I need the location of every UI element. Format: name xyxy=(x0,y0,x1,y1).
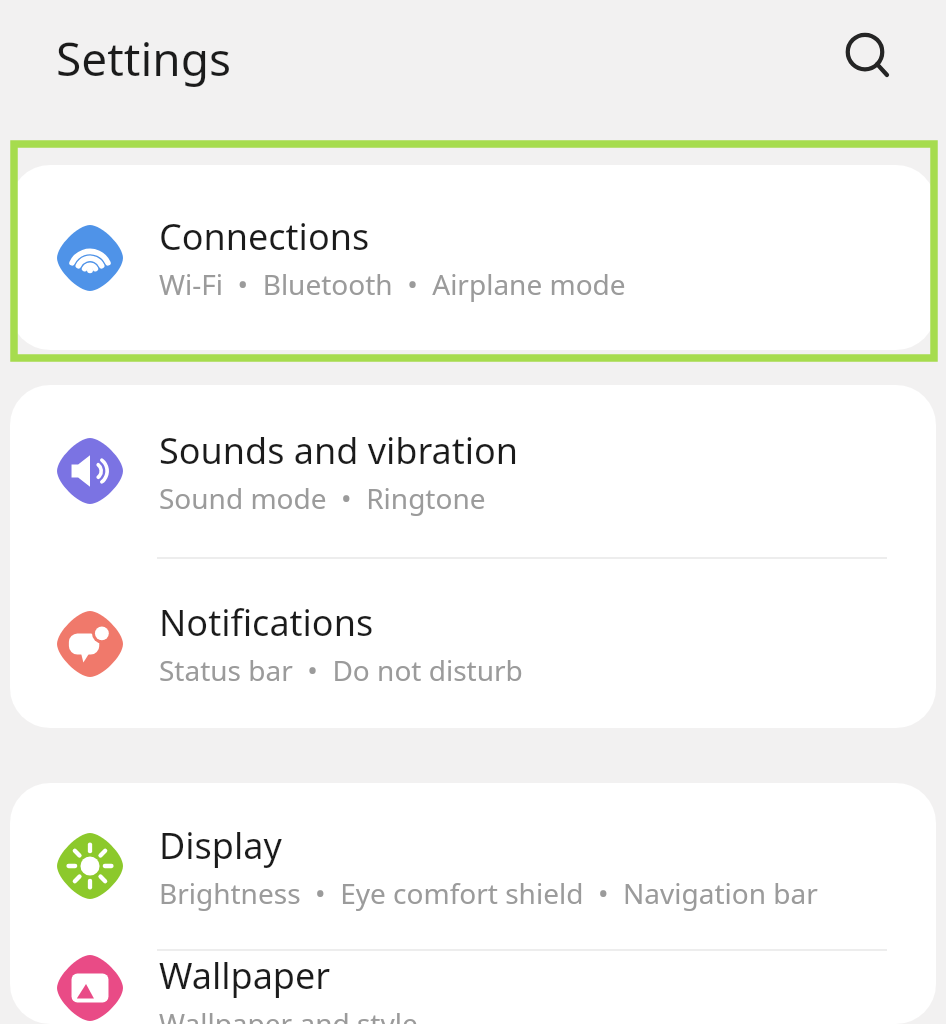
staticText: Settings xyxy=(56,27,232,90)
staticText: Connections xyxy=(159,212,370,261)
button[interactable]: Search xyxy=(827,15,911,99)
staticText: Sound mode • Ringtone xyxy=(159,479,486,517)
button[interactable]: Display xyxy=(10,783,936,949)
staticText: Notifications xyxy=(159,598,374,647)
button[interactable]: Notifications xyxy=(10,559,936,728)
staticText: Display xyxy=(159,821,282,870)
button[interactable]: Sounds and vibration xyxy=(10,385,936,557)
button[interactable]: Wallpaper xyxy=(10,951,936,1024)
staticText: Brightness • Eye comfort shield • Naviga… xyxy=(159,874,818,912)
staticText: Sounds and vibration xyxy=(159,426,519,475)
staticText: Wallpaper and style xyxy=(159,1004,418,1024)
staticText: Wi-Fi • Bluetooth • Airplane mode xyxy=(159,265,626,303)
staticText: Status bar • Do not disturb xyxy=(159,651,523,689)
button[interactable]: Connections xyxy=(10,165,936,350)
staticText: Wallpaper xyxy=(159,951,331,1000)
